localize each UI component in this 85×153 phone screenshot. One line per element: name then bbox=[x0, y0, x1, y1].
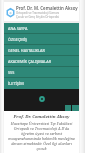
staticText: Çocuk ve Genç Erişkin Ortopedisi bbox=[16, 15, 60, 19]
staticText: ANA SAYFA bbox=[8, 26, 28, 31]
button[interactable]: ÖZGEÇMİŞ bbox=[4, 34, 79, 45]
button[interactable]: İLETİŞİM bbox=[4, 78, 79, 89]
staticText: Prof. Dr. Cemalettin Aksoy bbox=[7, 114, 76, 120]
staticText: İLETİŞİM bbox=[8, 81, 24, 86]
button[interactable]: SSS bbox=[4, 67, 79, 78]
staticText: Prof. Dr. M. Cemalettin Aksoy bbox=[16, 5, 78, 11]
staticText: SSS bbox=[8, 70, 15, 75]
button[interactable]: GENEL HASTALIKLAR bbox=[4, 45, 79, 56]
staticText: ÖZGEÇMİŞ bbox=[8, 37, 28, 42]
button[interactable]: ANA SAYFA bbox=[4, 23, 79, 34]
staticText: Hacettepe Üniversitesi Tıp Fakültesi Ort… bbox=[7, 121, 76, 151]
staticText: GENEL HASTALIKLAR bbox=[8, 48, 45, 53]
button[interactable]: AKADEMİK ÇALIŞMALAR bbox=[4, 56, 79, 67]
staticText: AKADEMİK ÇALIŞMALAR bbox=[8, 59, 51, 64]
staticText: Ortopedi ve Travmatoloji Uzmanı bbox=[16, 11, 60, 15]
